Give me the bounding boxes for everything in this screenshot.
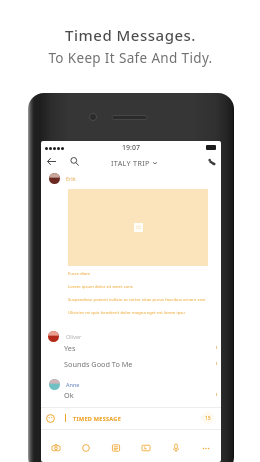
staticText: Erik	[66, 175, 76, 182]
button[interactable]: Timer 15 seconds	[202, 412, 214, 424]
staticText: Anne	[66, 381, 80, 388]
staticText: Sounds Good To Me	[64, 359, 133, 369]
button[interactable]: More	[191, 432, 221, 462]
staticText: Ultricies mi quis hendrerit dolor magna …	[68, 310, 185, 315]
staticText: Fusce diam	[68, 271, 91, 276]
staticText: Ok	[64, 390, 74, 400]
staticText: Timed Messages.	[65, 25, 196, 45]
staticText: ITALY TRIP	[111, 158, 150, 168]
staticText: 15	[205, 415, 211, 422]
button[interactable]: Voice record	[161, 432, 191, 462]
button[interactable]: Call	[204, 154, 219, 169]
staticText: Suspendisse potenti nullam ac tortor vit…	[68, 297, 206, 302]
staticText: TIMED MESSAGE	[73, 415, 122, 422]
button[interactable]: Back	[44, 154, 59, 169]
button[interactable]: GIF	[131, 432, 161, 462]
staticText: Lorem ipsum dolor sit amet cons	[68, 284, 133, 289]
button[interactable]: Stickers	[101, 432, 131, 462]
staticText: Yes	[64, 343, 76, 353]
button[interactable]: Emoji	[46, 414, 55, 423]
staticText: 19:07	[122, 143, 140, 153]
staticText: To Keep It Safe And Tidy.	[48, 49, 213, 67]
button[interactable]: Camera	[41, 432, 71, 462]
button[interactable]: Photos	[71, 432, 101, 462]
button[interactable]: Search	[67, 154, 82, 169]
staticText: Oliver	[66, 333, 82, 340]
button[interactable]: ITALY TRIP	[108, 155, 160, 171]
